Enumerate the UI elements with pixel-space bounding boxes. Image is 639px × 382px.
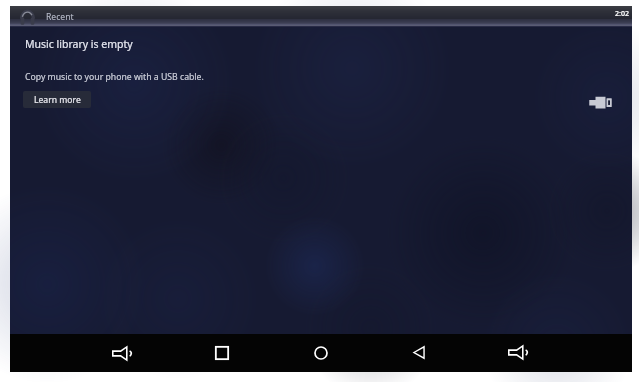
- staticText: Music library is empty: [25, 37, 133, 51]
- button[interactable]: Home: [286, 334, 356, 372]
- staticText: 2:02: [615, 9, 629, 19]
- button[interactable]: Back: [384, 334, 454, 372]
- button[interactable]: Volume up: [483, 334, 553, 372]
- staticText: Copy music to your phone with a USB cabl…: [25, 71, 204, 83]
- button[interactable]: Volume down: [87, 334, 157, 372]
- staticText: Learn more: [34, 94, 81, 106]
- button[interactable]: Recent: [20, 8, 74, 26]
- button[interactable]: Learn more: [23, 91, 91, 108]
- button[interactable]: Recents: [187, 334, 257, 372]
- staticText: Recent: [46, 11, 74, 23]
